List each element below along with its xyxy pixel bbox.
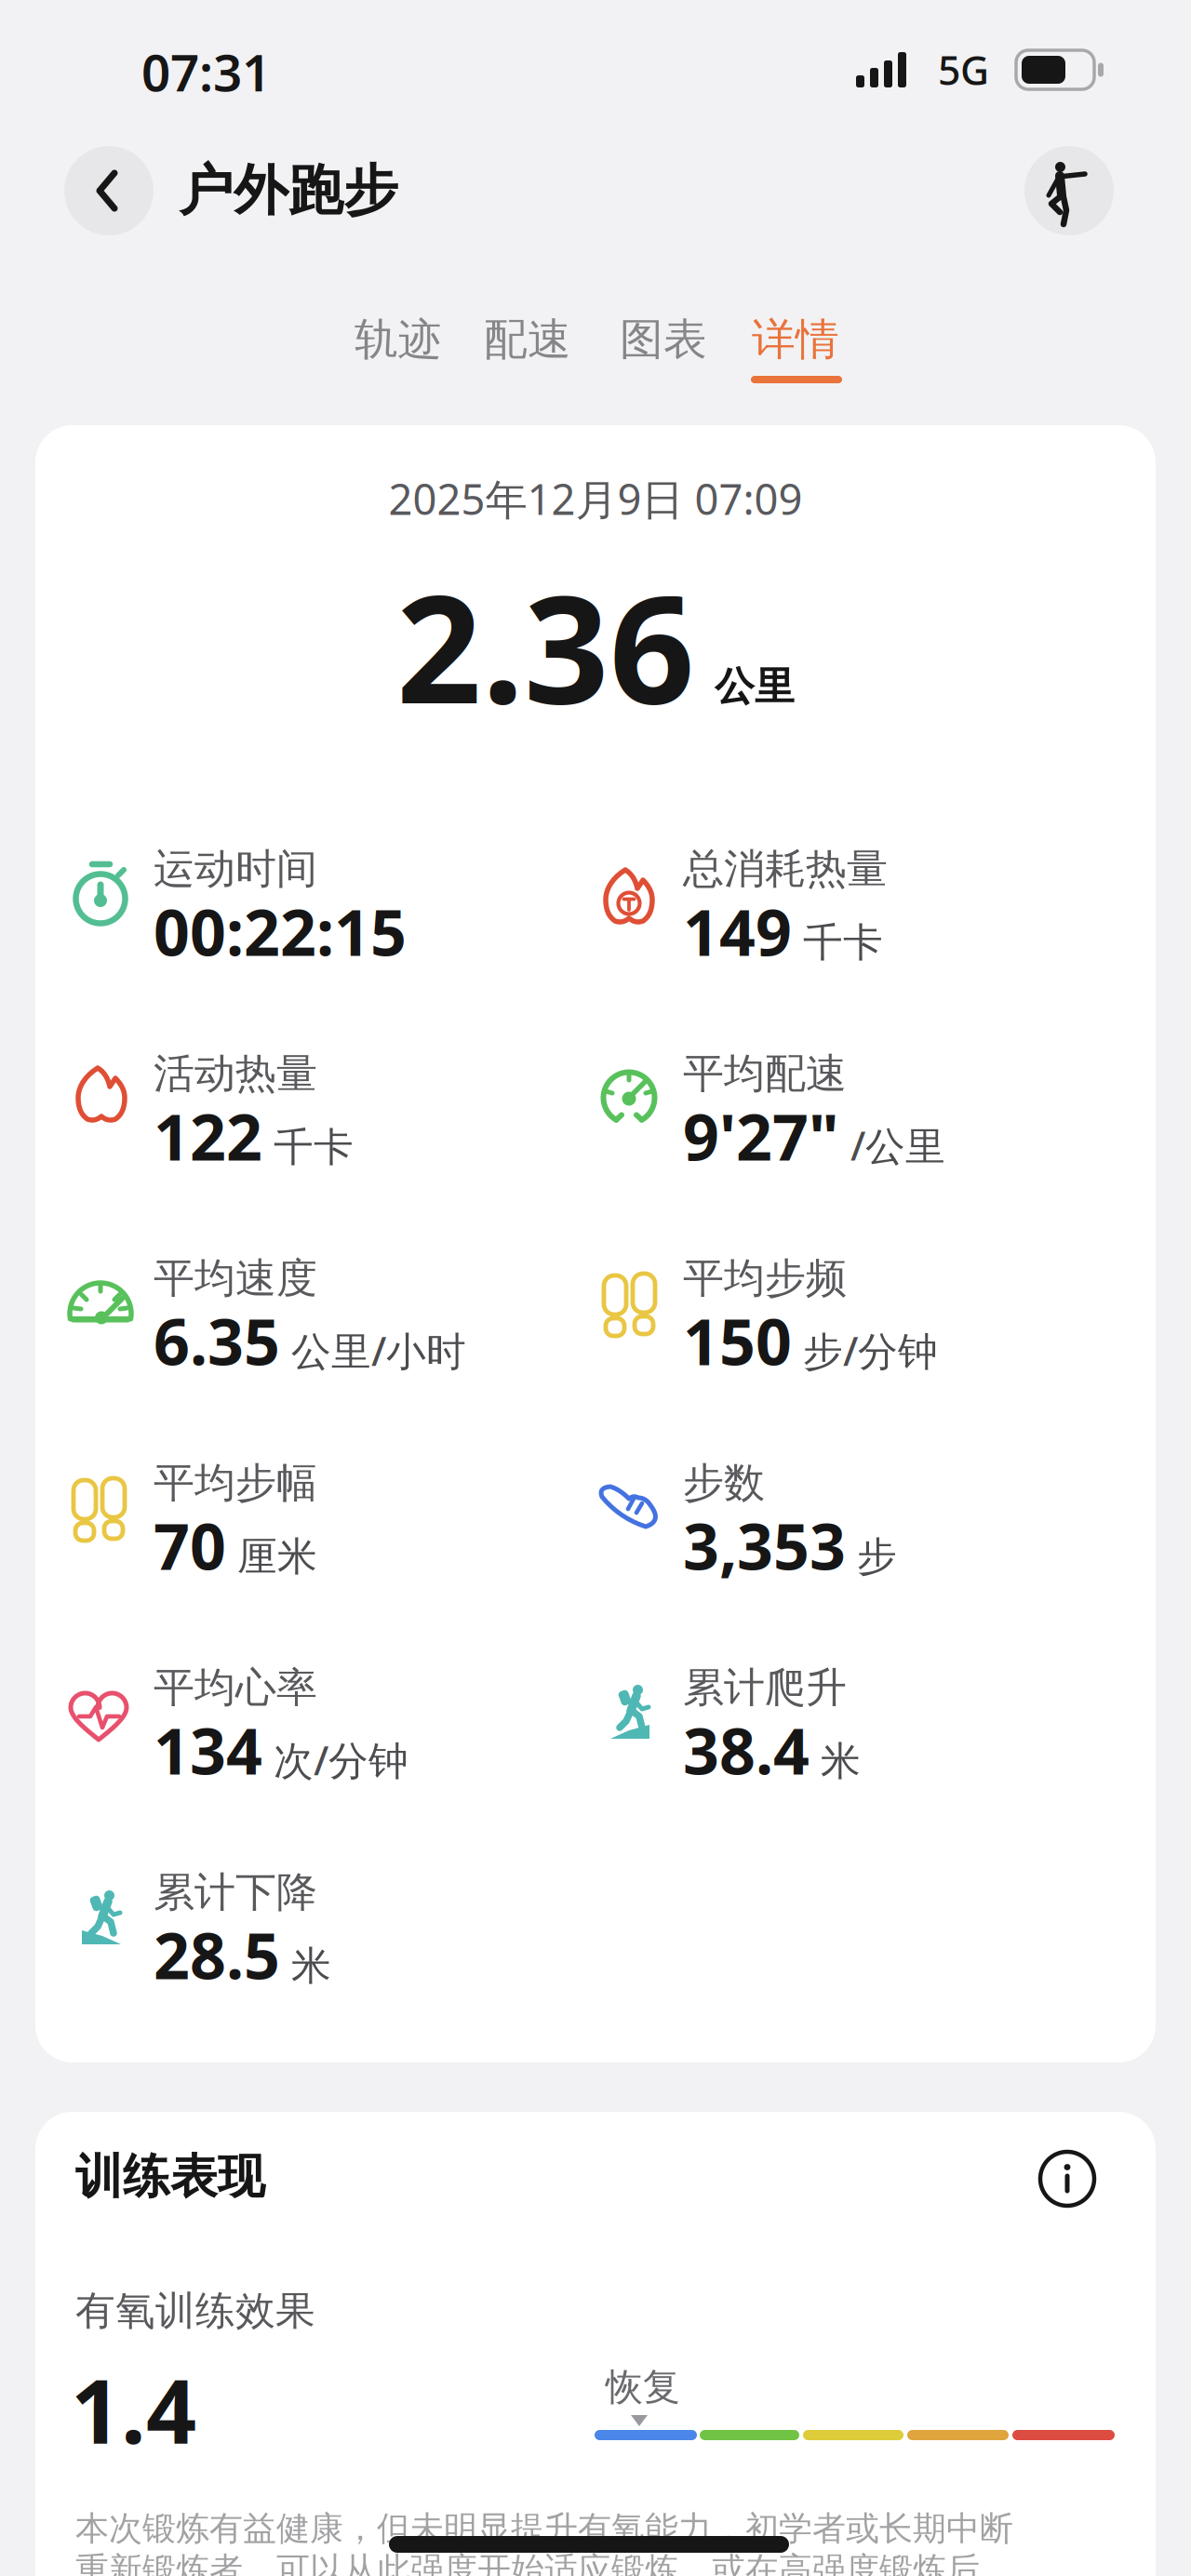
button[interactable]: 运动 [1024, 146, 1114, 235]
button[interactable]: Back [64, 146, 154, 235]
staticText: 轨迹 [355, 313, 442, 366]
staticText: 平均配速 [683, 1048, 847, 1099]
button[interactable]: 图表 [598, 310, 729, 369]
staticText: 累计爬升 [683, 1662, 847, 1713]
staticText: 活动热量 [154, 1048, 317, 1099]
staticText: 本次锻炼有益健康，但未明显提升有氧能力，初学者或长期中断 重新锻炼者，可以从此强… [75, 2508, 1013, 2576]
staticText: 千卡 [803, 918, 883, 967]
staticText: 28.5 [154, 1913, 280, 1997]
button[interactable]: 轨迹 [333, 310, 463, 369]
staticText: 9'27" [683, 1094, 839, 1178]
staticText: 配速 [484, 313, 571, 366]
staticText: 1.4 [71, 2351, 196, 2468]
staticText: 米 [291, 1942, 331, 1990]
staticText: 总消耗热量 [683, 844, 888, 894]
staticText: /公里 [850, 1119, 945, 1172]
staticText: 122 [154, 1094, 262, 1178]
staticText: 134 [154, 1708, 262, 1792]
staticText: 训练表现 [75, 2148, 265, 2206]
staticText: 厘米 [237, 1532, 317, 1581]
staticText: 3,353 [683, 1503, 846, 1587]
staticText: 平均步频 [683, 1253, 847, 1303]
staticText: 150 [683, 1299, 792, 1383]
staticText: 00:22:15 [154, 889, 407, 973]
staticText: 70 [154, 1503, 226, 1587]
staticText: 38.4 [683, 1708, 810, 1792]
staticText: 07:31 [141, 38, 271, 105]
button[interactable]: 配速 [462, 310, 593, 369]
staticText: 图表 [620, 313, 707, 366]
staticText: 户外跑步 [179, 157, 398, 224]
staticText: 平均心率 [154, 1662, 317, 1713]
staticText: 平均速度 [154, 1253, 317, 1303]
button[interactable]: 详情 [730, 310, 861, 369]
staticText: 有氧训练效果 [75, 2286, 315, 2335]
staticText: 2025年12月9日 07:09 [388, 471, 803, 527]
staticText: 6.35 [154, 1299, 280, 1383]
staticText: 5G [938, 43, 989, 96]
staticText: 累计下降 [154, 1867, 317, 1917]
staticText: 恢复 [606, 2364, 680, 2410]
staticText: 步/分钟 [803, 1324, 938, 1377]
staticText: 运动时间 [154, 844, 317, 894]
staticText: 米 [821, 1737, 861, 1786]
staticText: 平均步幅 [154, 1458, 317, 1508]
staticText: 149 [683, 889, 792, 973]
staticText: 公里/小时 [291, 1324, 466, 1377]
staticText: 步数 [683, 1458, 765, 1508]
staticText: 次/分钟 [274, 1733, 408, 1786]
staticText: 千卡 [274, 1123, 354, 1172]
staticText: 2.36 [396, 547, 695, 745]
button[interactable]: 信息 [1040, 2152, 1094, 2206]
staticText: 步 [857, 1532, 897, 1581]
staticText: 公里 [715, 662, 795, 711]
staticText: 详情 [752, 313, 839, 366]
